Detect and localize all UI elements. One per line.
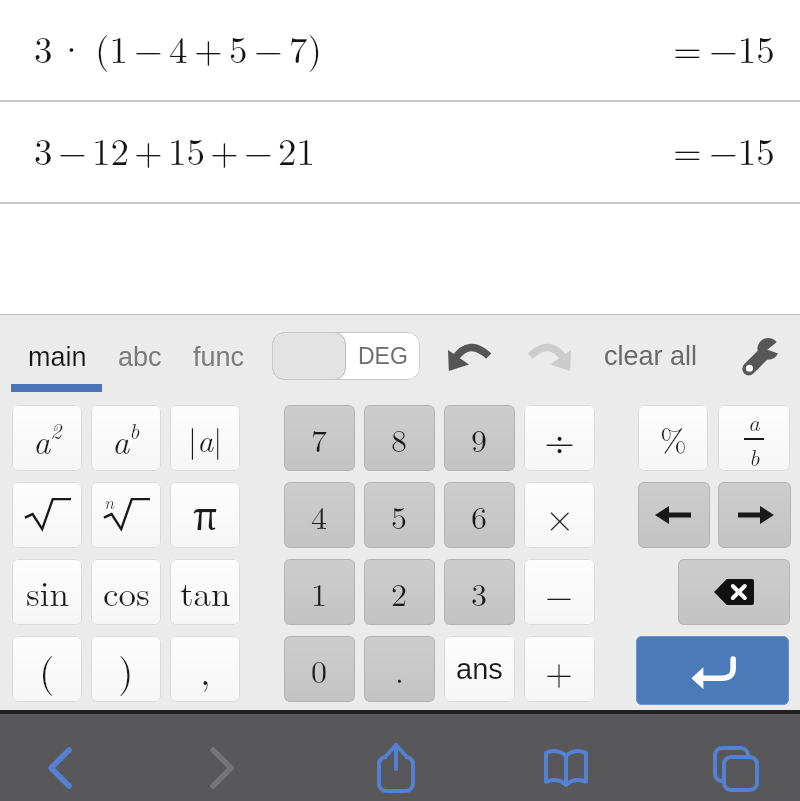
staticText: 6	[471, 493, 488, 538]
staticText: .	[395, 647, 404, 692]
staticText: 12	[92, 123, 129, 175]
staticText: 3	[34, 21, 53, 73]
staticText: 3	[34, 123, 53, 175]
staticText: a	[748, 405, 760, 438]
staticText: 0	[311, 647, 328, 692]
button[interactable]: 1	[284, 559, 355, 625]
staticText: 21	[278, 123, 315, 175]
button[interactable]: a2	[12, 405, 82, 471]
staticText: func	[193, 342, 245, 372]
staticText: +	[134, 123, 163, 175]
button[interactable]: 4	[284, 482, 355, 548]
button[interactable]	[636, 636, 789, 705]
staticText: −	[545, 567, 574, 618]
button[interactable]: ×	[524, 482, 595, 548]
button[interactable]: 0	[284, 636, 355, 702]
staticText: n	[104, 489, 115, 514]
button[interactable]: tan	[170, 559, 240, 625]
button[interactable]: sin	[12, 559, 82, 625]
staticText: 3	[471, 570, 488, 615]
button[interactable]	[738, 334, 784, 378]
button[interactable]: 3	[444, 559, 515, 625]
button[interactable]: func	[184, 332, 254, 382]
staticText: 8	[391, 416, 408, 461]
staticText: 5	[229, 21, 248, 73]
button[interactable]: ÷	[524, 405, 595, 471]
button[interactable]: π	[170, 482, 240, 548]
button[interactable]	[678, 559, 790, 625]
button[interactable]: .	[364, 636, 435, 702]
staticText: −15	[709, 123, 775, 175]
staticText: b	[749, 440, 760, 471]
button[interactable]	[638, 482, 710, 548]
staticText: −	[244, 123, 273, 175]
staticText: −	[254, 21, 283, 73]
staticText: 7	[311, 416, 328, 461]
staticText: =	[673, 123, 702, 175]
staticText: a2	[33, 414, 62, 463]
staticText: ans	[456, 653, 503, 685]
button[interactable]: 8	[364, 405, 435, 471]
staticText: π	[193, 489, 218, 541]
button[interactable]: abc	[108, 332, 172, 382]
staticText: 1	[311, 570, 328, 615]
staticText: cos	[103, 567, 150, 617]
button[interactable]: cos	[91, 559, 161, 625]
button[interactable]	[710, 742, 762, 794]
button[interactable]: (	[12, 636, 82, 702]
button[interactable]: main	[18, 332, 96, 382]
staticText: 7)	[289, 21, 322, 73]
staticText: 4	[169, 21, 188, 73]
button[interactable]: a	[718, 405, 790, 471]
button[interactable]	[370, 738, 422, 798]
button[interactable]: −	[524, 559, 595, 625]
staticText: %	[660, 416, 687, 461]
button[interactable]	[525, 334, 575, 378]
button[interactable]: ans	[444, 636, 515, 702]
staticText: )	[118, 641, 134, 698]
staticText: sin	[26, 567, 69, 617]
staticText: ab	[112, 414, 140, 463]
button[interactable]: DEG	[272, 332, 420, 380]
staticText: clear all	[604, 341, 698, 371]
button[interactable]: +	[524, 636, 595, 702]
button[interactable]: |a|	[170, 405, 240, 471]
button[interactable]: ab	[91, 405, 161, 471]
staticText: −	[134, 21, 163, 73]
button[interactable]: 3	[0, 0, 800, 100]
staticText: |a|	[188, 416, 223, 461]
staticText: DEG	[358, 343, 408, 369]
button[interactable]	[40, 742, 80, 794]
button[interactable]: 9	[444, 405, 515, 471]
staticText: 2	[391, 570, 408, 615]
staticText: 4	[311, 493, 328, 538]
staticText: −15	[709, 21, 775, 73]
button[interactable]: 6	[444, 482, 515, 548]
button[interactable]	[444, 334, 494, 378]
button[interactable]: 7	[284, 405, 355, 471]
button[interactable]	[12, 482, 82, 548]
staticText: 15	[168, 123, 205, 175]
staticText: ÷	[544, 410, 576, 467]
staticText: +	[194, 21, 223, 73]
button[interactable]: n	[91, 482, 161, 548]
button[interactable]	[540, 742, 592, 794]
button[interactable]: )	[91, 636, 161, 702]
button[interactable]: ,	[170, 636, 240, 702]
staticText: tan	[180, 567, 231, 617]
button[interactable]: clear all	[596, 332, 706, 380]
button[interactable]	[202, 742, 242, 794]
staticText: +	[545, 644, 574, 695]
button[interactable]: %	[638, 405, 708, 471]
staticText: +	[210, 123, 239, 175]
button[interactable]	[718, 482, 791, 548]
staticText: ×	[545, 488, 575, 542]
staticText: ·	[57, 21, 86, 73]
button[interactable]: 5	[364, 482, 435, 548]
staticText: (	[39, 641, 55, 698]
staticText: =	[673, 21, 702, 73]
staticText: (1	[95, 21, 128, 73]
button[interactable]: 3	[0, 102, 800, 202]
staticText: −	[58, 123, 87, 175]
button[interactable]: 2	[364, 559, 435, 625]
